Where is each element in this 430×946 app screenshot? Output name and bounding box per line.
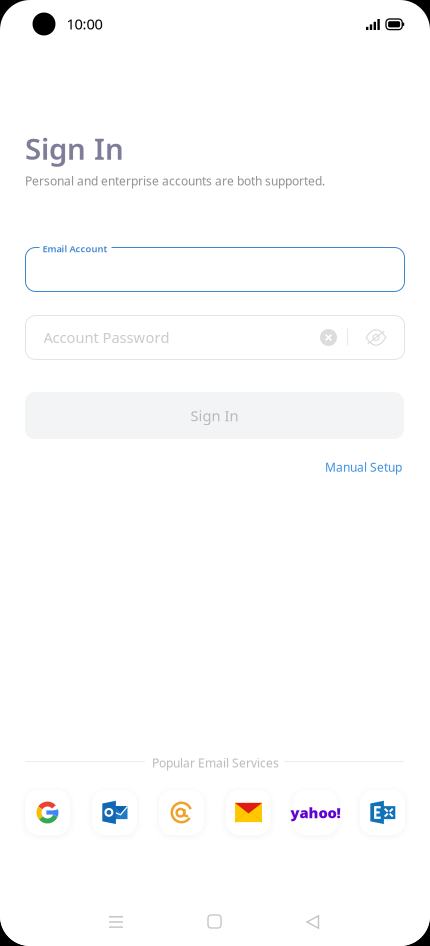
button[interactable]: Manual Setup — [25, 459, 402, 475]
staticText: Popular Email Services — [152, 755, 279, 771]
button[interactable]: Back — [290, 899, 335, 945]
staticText: Account Password — [43, 327, 169, 347]
staticText: Sign In — [190, 406, 238, 425]
button[interactable]: Exchange — [360, 790, 405, 835]
staticText: yahoo! — [290, 803, 340, 822]
button[interactable]: Recent apps — [93, 900, 139, 944]
button[interactable]: Yahoo — [293, 790, 338, 835]
staticText: Manual Setup — [325, 459, 402, 475]
button[interactable]: Home — [192, 899, 237, 944]
button[interactable]: Outlook — [92, 790, 137, 835]
button[interactable]: Other email — [159, 790, 204, 835]
staticText: 10:00 — [66, 14, 102, 33]
button[interactable]: Google — [25, 790, 70, 835]
staticText: Personal and enterprise accounts are bot… — [25, 173, 325, 189]
button[interactable]: Sign In — [25, 392, 404, 439]
staticText: Email Account — [42, 242, 107, 255]
staticText: Sign In — [25, 129, 124, 168]
button[interactable]: Gmail — [226, 790, 271, 835]
